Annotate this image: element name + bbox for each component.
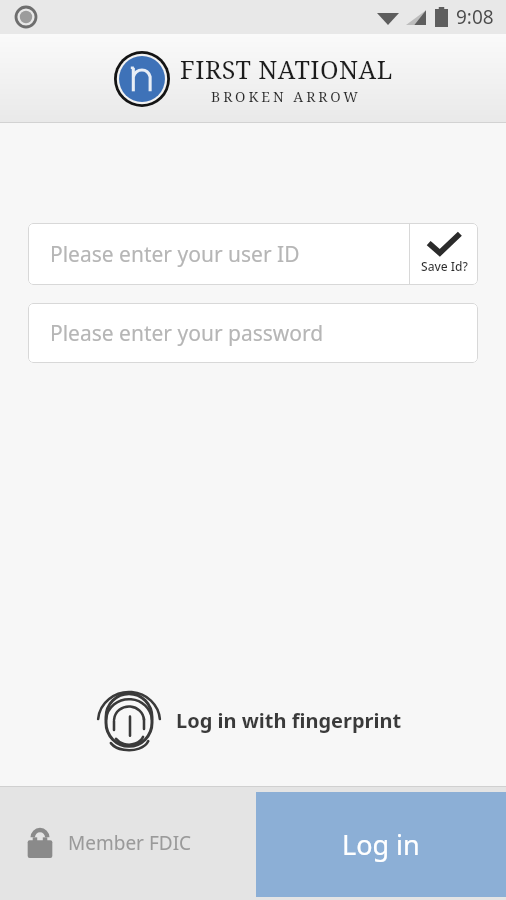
staticText: Please enter your user ID <box>50 240 300 269</box>
staticText: Log in with fingerprint <box>176 707 402 734</box>
other: Secure <box>26 826 54 860</box>
staticText: 9:08 <box>456 4 494 30</box>
button[interactable]: Log in <box>256 792 506 897</box>
staticText: Save Id? <box>421 258 468 274</box>
staticText: Member FDIC <box>68 830 192 856</box>
button[interactable]: Fingerprint <box>104 692 402 748</box>
staticText: Log in <box>342 826 420 863</box>
button[interactable]: Secure <box>26 826 192 860</box>
staticText: Please enter your password <box>50 319 324 348</box>
button[interactable]: Please enter your user ID <box>28 223 409 285</box>
staticText: FIRST NATIONAL <box>180 52 393 86</box>
other: Fingerprint <box>104 692 154 748</box>
button[interactable]: Save Id <box>410 223 478 285</box>
staticText: BROKEN ARROW <box>211 87 362 106</box>
button[interactable]: Please enter your password <box>28 303 478 363</box>
